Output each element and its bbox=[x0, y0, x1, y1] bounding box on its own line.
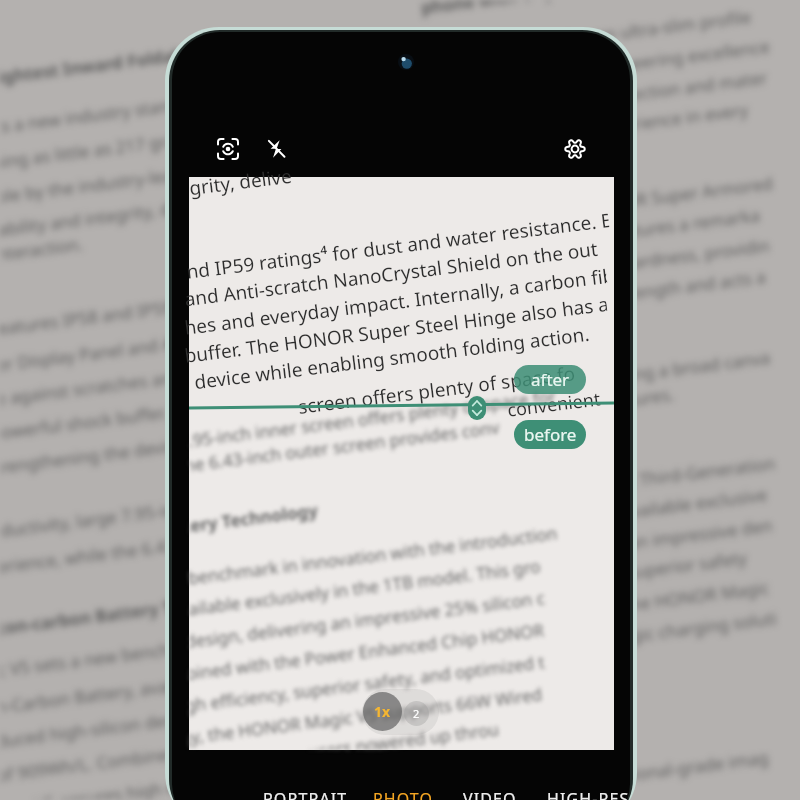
staticText: t and Lightest Inward Foldable Smartph bbox=[0, 32, 277, 95]
staticText: 1x bbox=[374, 702, 391, 721]
button[interactable]: VIDEO bbox=[455, 776, 525, 800]
staticText: gineered with HONOR Super Armored bbox=[470, 172, 774, 231]
staticText: grity, delive bbox=[188, 163, 293, 201]
staticText: tent² and achieving an impressive den bbox=[470, 514, 774, 573]
button[interactable]: PHOTO bbox=[366, 776, 440, 800]
staticText: VIDEO bbox=[463, 788, 517, 800]
staticText: device while enabling smooth folding act… bbox=[193, 321, 591, 395]
staticText: 2 and the SoC, with superior safety bbox=[470, 546, 748, 603]
staticText: 2 bbox=[413, 706, 420, 721]
staticText: ttery Technology bbox=[174, 498, 320, 539]
staticText: ones, featuring an ultra-slim profile bbox=[470, 5, 752, 62]
staticText: cess to essential features. bbox=[469, 383, 676, 430]
staticText: vating the user experience in every bbox=[470, 98, 749, 155]
staticText: olutions to keep users powered up throu bbox=[175, 717, 500, 780]
staticText: layer with 380GPa hardness, providin bbox=[470, 234, 771, 293]
staticText: PORTRAIT bbox=[263, 788, 348, 800]
staticText: buffer. The HONOR Super Steel Hinge also… bbox=[183, 291, 608, 369]
staticText: nd 50W Wireless Magic charging soluti bbox=[470, 606, 778, 667]
staticText: hes and everyday impact. Internally, a c… bbox=[183, 263, 608, 341]
staticText: screen offers plenty of space fo bbox=[296, 360, 577, 420]
button[interactable]: after bbox=[514, 365, 586, 394]
staticText: her strengthening the device while ena bbox=[0, 423, 266, 484]
staticText: nd IP59 ratings⁴ for dust and water resi… bbox=[185, 207, 610, 285]
staticText: ic Magic V5 sets a new benchmark in bbox=[0, 630, 232, 689]
button[interactable]: PORTRAIT bbox=[257, 776, 353, 800]
staticText: r³, offering a professional-grade imag bbox=[470, 746, 770, 800]
staticText: and Anti-scratch NanoCrystal Shield on t… bbox=[183, 236, 599, 312]
staticText: iliance against scratches and everyday bbox=[0, 355, 259, 415]
staticText: s, revolutionary protection and mater bbox=[470, 66, 768, 125]
staticText: as a powerful shock buffer. The HONO bbox=[0, 390, 258, 449]
staticText: after bbox=[531, 368, 570, 391]
button[interactable]: before bbox=[514, 420, 586, 449]
staticText: convenient bbox=[506, 386, 602, 423]
staticText: c V5 sets a new industry standard for bbox=[0, 86, 235, 145]
staticText: creen, the device features a remarka bbox=[470, 203, 761, 262]
staticText: d Inner Display Panel and Anti-scratch bbox=[0, 322, 258, 381]
staticText: y-produced high-silicon design, deliver bbox=[0, 697, 262, 758]
staticText: PHOTO bbox=[373, 788, 434, 800]
button[interactable]: HIGH-RES bbox=[540, 776, 630, 800]
staticText: era bbox=[469, 720, 499, 747]
staticText: rmal performance, the HONOR Magic bbox=[470, 576, 770, 635]
staticText: mpressive tensile strength and acts a bbox=[470, 265, 767, 324]
button[interactable]: Drag comparison slider bbox=[468, 396, 486, 420]
staticText: al reliability and integrity, delivering bbox=[0, 189, 240, 246]
staticText: Silicon-Carbon Battery, available exclu bbox=[0, 664, 257, 723]
button[interactable]: Settings bbox=[559, 133, 591, 165]
staticText: 7.95-inch inner screen offers plenty of … bbox=[177, 384, 558, 453]
staticText: edge battery technology, the HONOR M bbox=[0, 799, 271, 800]
button[interactable]: 1x bbox=[363, 692, 402, 731]
staticText: very interaction. bbox=[0, 232, 85, 271]
staticText: ogy, the HONOR Magic V5 supports 66W Wir… bbox=[172, 682, 544, 751]
staticText: OR Magic V5 ensures high efficiency, s bbox=[0, 765, 259, 800]
button[interactable]: AI scan mode bbox=[212, 133, 244, 165]
staticText: high efficiency, superior safety, and op… bbox=[172, 650, 546, 719]
staticText: nce productivity, large 7.95-inch inner bbox=[0, 490, 241, 549]
staticText: available exclusively in the 1TB model. … bbox=[172, 554, 542, 623]
staticText: nsity of 909Wh/L. Combined with the P bbox=[0, 731, 263, 792]
button[interactable]: Flash off bbox=[261, 133, 293, 165]
staticText: out the day. bbox=[469, 650, 566, 685]
staticText: phone with Unparalleled Durability bbox=[420, 0, 718, 19]
staticText: possible by the industry-leading HON bbox=[0, 154, 252, 213]
staticText: weighing as little as 217 grams. This bbox=[0, 120, 242, 178]
staticText: before bbox=[524, 423, 577, 446]
staticText: of the industry's first Third-Generation bbox=[470, 451, 777, 512]
staticText: mbined with the Power Enhanced Chip HONO… bbox=[172, 618, 546, 687]
staticText: multitasking, providing a broad canva bbox=[470, 346, 772, 405]
staticText: HIGH-RES bbox=[547, 788, 630, 800]
staticText: igh Silicon-carbon Battery Technology bbox=[0, 585, 260, 646]
staticText: the 6.43-inch outer screen provides conv bbox=[177, 415, 501, 478]
staticText: w benchmark in innovation with the intro… bbox=[172, 521, 559, 592]
staticText: n design, delivering an impressive 25% s… bbox=[172, 586, 546, 655]
button[interactable]: 2 bbox=[404, 701, 429, 726]
staticText: dbreaking battery, available exclusive bbox=[470, 483, 768, 542]
staticText: less pursuit of engineering excellence bbox=[470, 35, 771, 94]
staticText: e experience, while the 6.43-inch oute bbox=[0, 524, 256, 583]
staticText: gic V5 features IP58 and IP59 ratings bbox=[0, 288, 233, 347]
